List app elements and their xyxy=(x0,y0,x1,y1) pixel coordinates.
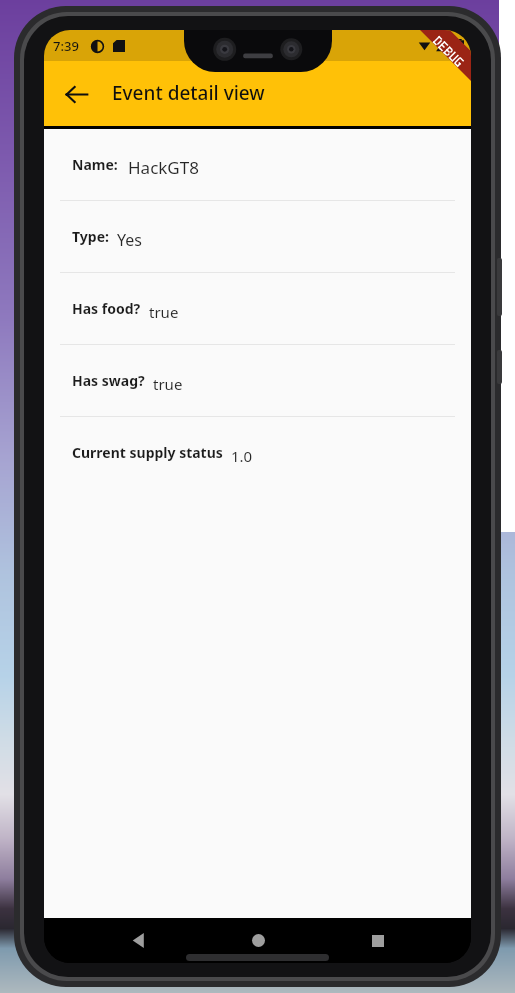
button[interactable]: Current supply status xyxy=(44,417,471,488)
staticText: true xyxy=(149,302,179,322)
staticText: Yes xyxy=(117,229,142,251)
staticText: true xyxy=(153,374,183,394)
button[interactable]: Has swag? xyxy=(44,345,471,416)
button[interactable]: Recent apps xyxy=(351,918,405,963)
staticText: Has swag? xyxy=(72,371,145,390)
staticText: Type: xyxy=(72,227,109,246)
staticText: Event detail view xyxy=(112,80,265,106)
staticText: 7:39 xyxy=(53,37,79,55)
button[interactable]: Back xyxy=(52,70,100,118)
button[interactable]: Home xyxy=(231,918,285,963)
staticText: 1.0 xyxy=(231,446,253,466)
staticText: Has food? xyxy=(72,299,141,318)
button[interactable]: Has food? xyxy=(44,273,471,344)
staticText: Current supply status xyxy=(72,443,223,462)
button[interactable]: Type: xyxy=(44,201,471,272)
staticText: Name: xyxy=(72,155,118,174)
staticText: HackGT8 xyxy=(128,156,199,179)
button[interactable]: Name: xyxy=(44,129,471,200)
button[interactable]: Back xyxy=(110,918,164,963)
